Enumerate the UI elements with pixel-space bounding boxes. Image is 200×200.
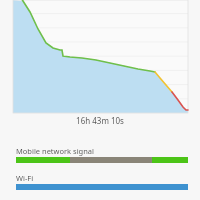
- staticText: Wi-Fi: [16, 173, 34, 183]
- button[interactable]: Mobile network signal: [0, 146, 200, 162]
- staticText: 16h 43m 10s: [0, 115, 200, 126]
- staticText: Mobile network signal: [16, 146, 94, 156]
- button[interactable]: Wi-Fi: [0, 173, 200, 189]
